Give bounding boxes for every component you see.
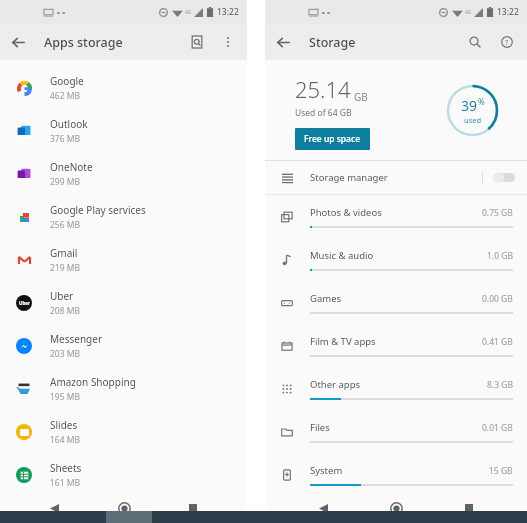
button[interactable]: Back: [39, 493, 69, 523]
staticText: 1.0 GB: [487, 250, 513, 262]
staticText: Slides: [50, 418, 78, 432]
staticText: GB: [354, 90, 368, 104]
staticText: 376 MB: [50, 133, 81, 145]
button[interactable]: Google: [0, 66, 247, 109]
staticText: 13:22: [217, 6, 239, 18]
button[interactable]: Search documents: [181, 26, 213, 58]
staticText: Uber: [19, 300, 30, 306]
staticText: Google: [50, 74, 84, 88]
staticText: Amazon Shopping: [50, 375, 136, 389]
button[interactable]: Outlook: [0, 109, 247, 152]
staticText: 4G: [465, 9, 472, 16]
staticText: 13:22: [497, 6, 519, 18]
button[interactable]: Recents: [178, 493, 208, 523]
button[interactable]: More options: [213, 27, 243, 57]
staticText: 4G: [185, 9, 192, 16]
button[interactable]: Slides: [0, 410, 247, 453]
button[interactable]: Google Play services: [0, 195, 247, 238]
button[interactable]: Gmail: [0, 238, 247, 281]
button[interactable]: Storage manager toggle: [493, 172, 515, 183]
button[interactable]: Sheets: [0, 453, 247, 496]
staticText: Photos & videos: [310, 206, 382, 219]
staticText: 219 MB: [50, 262, 81, 274]
staticText: System: [310, 464, 343, 477]
staticText: 0.75 GB: [482, 207, 513, 219]
button[interactable]: Help: [491, 26, 523, 58]
staticText: 15 GB: [489, 465, 513, 477]
staticText: 462 MB: [50, 90, 81, 102]
button[interactable]: Music & audio: [265, 238, 527, 281]
staticText: %: [478, 96, 485, 107]
button[interactable]: Home: [109, 493, 139, 523]
button[interactable]: Free up space: [295, 128, 370, 150]
button[interactable]: Navigate up: [0, 24, 36, 60]
staticText: 0.00 GB: [482, 293, 513, 305]
staticText: 161 MB: [50, 477, 81, 489]
staticText: 164 MB: [50, 434, 81, 446]
staticText: 299 MB: [50, 176, 81, 188]
button[interactable]: Recents: [454, 493, 484, 523]
staticText: Storage manager: [310, 171, 388, 184]
button[interactable]: System: [265, 453, 527, 496]
staticText: Google Play services: [50, 203, 146, 217]
staticText: 203 MB: [50, 348, 81, 360]
staticText: Used of 64 GB: [295, 107, 352, 119]
button[interactable]: Storage manager: [265, 161, 527, 194]
staticText: Gmail: [50, 246, 78, 260]
staticText: Free up space: [304, 133, 361, 145]
staticText: Apps storage: [44, 34, 123, 51]
button[interactable]: OneNote: [0, 152, 247, 195]
staticText: OneNote: [50, 160, 93, 174]
staticText: 8.3 GB: [487, 379, 513, 391]
staticText: Film & TV apps: [310, 335, 376, 348]
button[interactable]: Back: [308, 493, 338, 523]
staticText: 0.01 GB: [482, 422, 513, 434]
staticText: Games: [310, 292, 342, 305]
staticText: 25.14: [295, 74, 351, 104]
staticText: Music & audio: [310, 249, 374, 262]
staticText: used: [464, 115, 482, 125]
staticText: 0.41 GB: [482, 336, 513, 348]
button[interactable]: Search: [459, 26, 491, 58]
button[interactable]: Files: [265, 410, 527, 453]
staticText: 39: [461, 96, 478, 115]
staticText: Storage: [309, 34, 356, 51]
staticText: Uber: [50, 289, 74, 303]
button[interactable]: Amazon Shopping: [0, 367, 247, 410]
staticText: 256 MB: [50, 219, 81, 231]
button[interactable]: Home: [381, 493, 411, 523]
staticText: 195 MB: [50, 391, 81, 403]
staticText: Messenger: [50, 332, 103, 346]
staticText: Sheets: [50, 461, 82, 475]
button[interactable]: Navigate up: [265, 24, 301, 60]
staticText: Outlook: [50, 117, 88, 131]
staticText: Files: [310, 421, 330, 434]
button[interactable]: Photos & videos: [265, 195, 527, 238]
button[interactable]: Games: [265, 281, 527, 324]
button[interactable]: Other apps: [265, 367, 527, 410]
button[interactable]: Uber: [0, 281, 247, 324]
button[interactable]: Film & TV apps: [265, 324, 527, 367]
staticText: Other apps: [310, 378, 361, 391]
staticText: 208 MB: [50, 305, 81, 317]
button[interactable]: Messenger: [0, 324, 247, 367]
staticText: ?: [505, 37, 509, 47]
